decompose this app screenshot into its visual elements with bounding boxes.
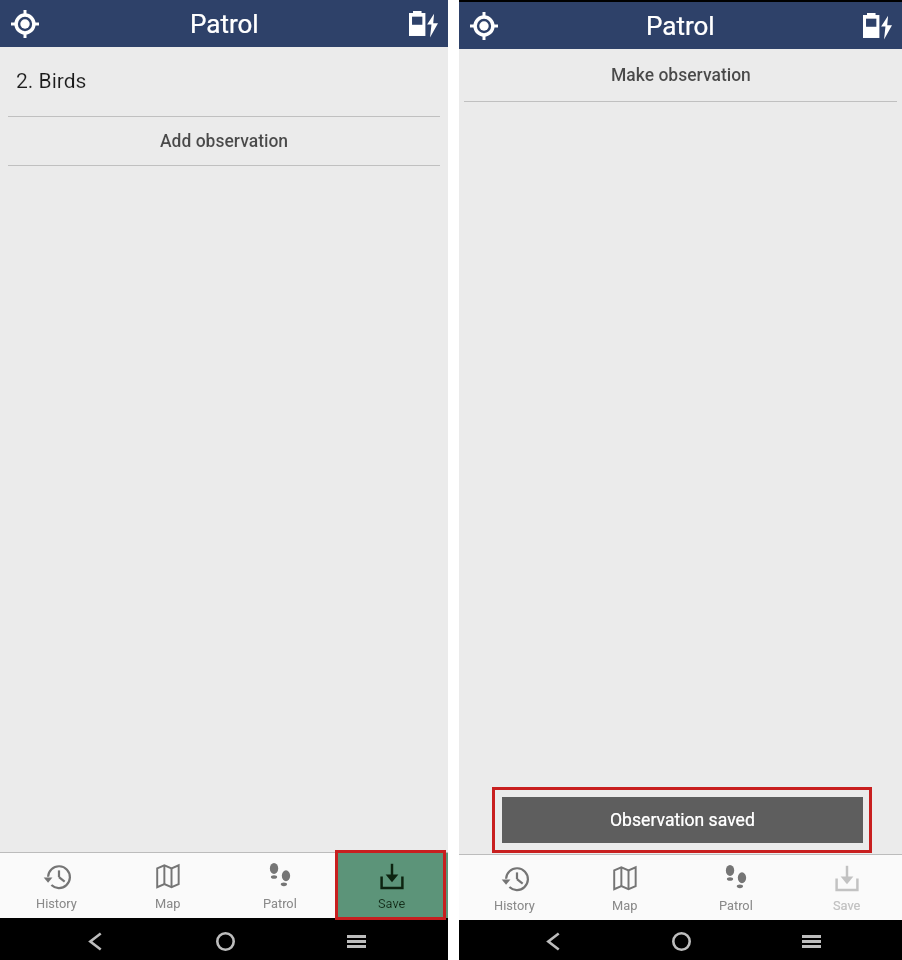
staticText: Observation saved (610, 810, 755, 831)
staticText: Patrol (263, 896, 297, 911)
button[interactable]: Add observation (0, 117, 448, 165)
button[interactable]: Patrol (224, 853, 336, 918)
button[interactable]: Home (660, 921, 702, 960)
staticText: Make observation (611, 65, 751, 86)
staticText: Patrol (719, 898, 753, 913)
staticText: Add observation (160, 131, 289, 152)
button[interactable]: My location (463, 5, 505, 47)
button[interactable]: Save (791, 855, 902, 920)
button[interactable]: Battery charging (856, 5, 898, 47)
button[interactable]: History (0, 853, 112, 918)
button[interactable]: Map (112, 853, 224, 918)
staticText: Save (378, 896, 406, 911)
button[interactable]: Recent apps (790, 921, 832, 960)
button[interactable]: Back (532, 921, 574, 960)
staticText: Patrol (190, 9, 259, 39)
staticText: History (494, 898, 535, 913)
button[interactable]: Make observation (459, 49, 902, 101)
staticText: Patrol (646, 11, 715, 41)
staticText: Save (833, 898, 861, 913)
button[interactable]: Patrol (680, 855, 791, 920)
staticText: Map (612, 898, 638, 913)
staticText: 2. Birds (16, 69, 87, 94)
button[interactable]: Recent apps (335, 920, 377, 960)
button[interactable]: Back (74, 920, 116, 960)
staticText: Map (155, 896, 181, 911)
button[interactable]: Map (569, 855, 680, 920)
button[interactable]: History (459, 855, 569, 920)
staticText: History (36, 896, 77, 911)
button[interactable]: Save (336, 853, 448, 918)
button[interactable]: My location (4, 3, 46, 45)
button[interactable]: Home (204, 920, 246, 960)
button[interactable]: Battery charging (402, 3, 444, 45)
